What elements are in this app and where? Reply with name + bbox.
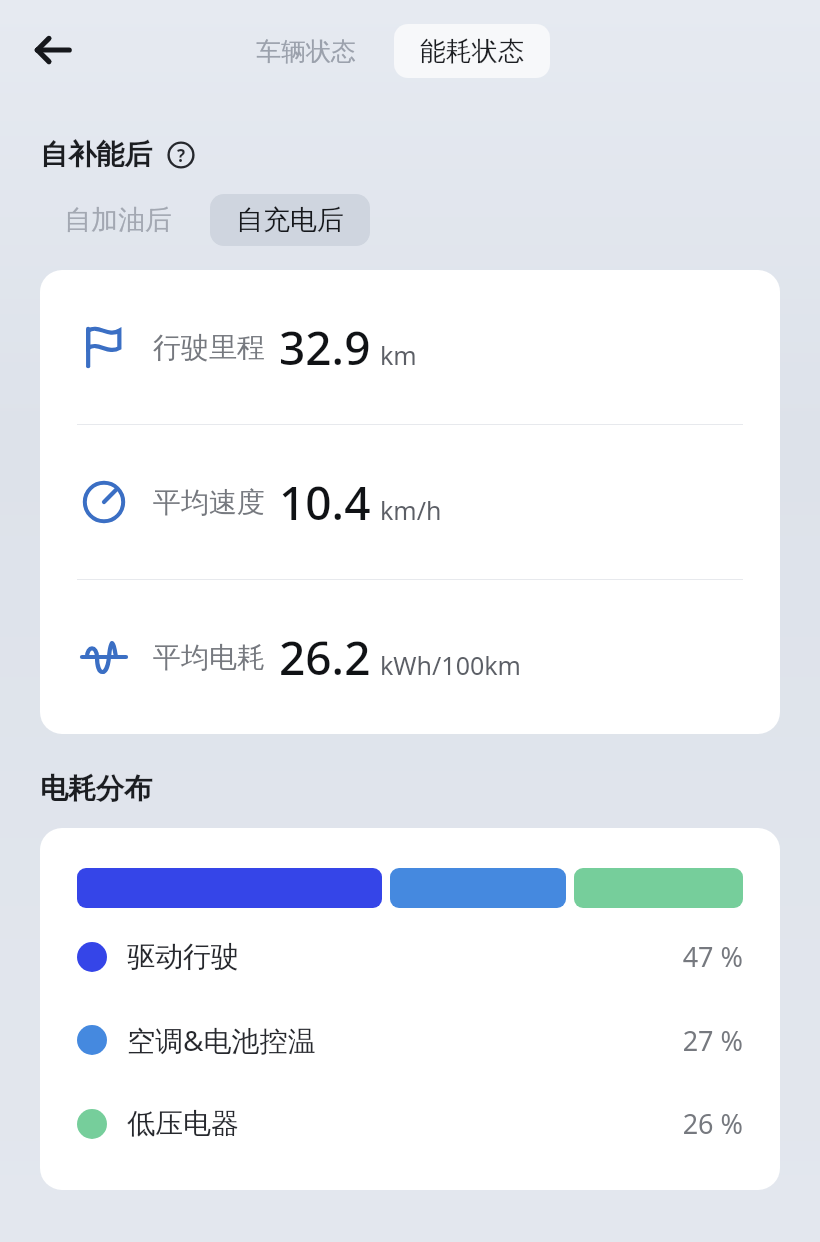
button[interactable]: 自充电后 xyxy=(210,194,370,246)
button[interactable]: Back xyxy=(26,23,80,77)
button[interactable]: Help xyxy=(166,140,196,170)
staticText: 47 % xyxy=(682,938,743,975)
staticText: 空调&电池控温 xyxy=(127,1021,316,1059)
button[interactable]: 平均速度 xyxy=(40,425,780,579)
button[interactable]: 平均电耗 xyxy=(40,580,780,734)
button[interactable]: 行驶里程 xyxy=(40,270,780,424)
staticText: 自充电后 xyxy=(236,203,344,237)
staticText: 低压电器 xyxy=(127,1106,239,1141)
staticText: 驱动行驶 xyxy=(127,939,239,974)
staticText: 自加油后 xyxy=(64,203,172,237)
button[interactable]: 低压电器 xyxy=(77,1105,743,1142)
button[interactable]: 自加油后 xyxy=(40,194,196,246)
staticText: 26.2 xyxy=(279,626,371,689)
staticText: 10.4 xyxy=(279,471,371,534)
staticText: ? xyxy=(177,144,186,167)
staticText: 车辆状态 xyxy=(256,36,356,67)
staticText: 能耗状态 xyxy=(420,35,524,68)
staticText: 32.9 xyxy=(279,316,371,379)
staticText: 电耗分布 xyxy=(40,771,152,806)
staticText: 平均速度 xyxy=(153,485,265,520)
staticText: kWh/100km xyxy=(380,648,521,682)
staticText: 平均电耗 xyxy=(153,640,265,675)
staticText: km/h xyxy=(380,493,442,527)
staticText: 27 % xyxy=(682,1022,743,1059)
staticText: 行驶里程 xyxy=(153,330,265,365)
staticText: 自补能后 xyxy=(40,137,152,172)
button[interactable]: 能耗状态 xyxy=(394,24,550,78)
button[interactable]: 车辆状态 xyxy=(230,24,382,78)
staticText: km xyxy=(380,338,417,372)
staticText: 26 % xyxy=(682,1105,743,1142)
button[interactable]: 驱动行驶 xyxy=(77,938,743,975)
button[interactable]: 空调&电池控温 xyxy=(77,1021,743,1059)
